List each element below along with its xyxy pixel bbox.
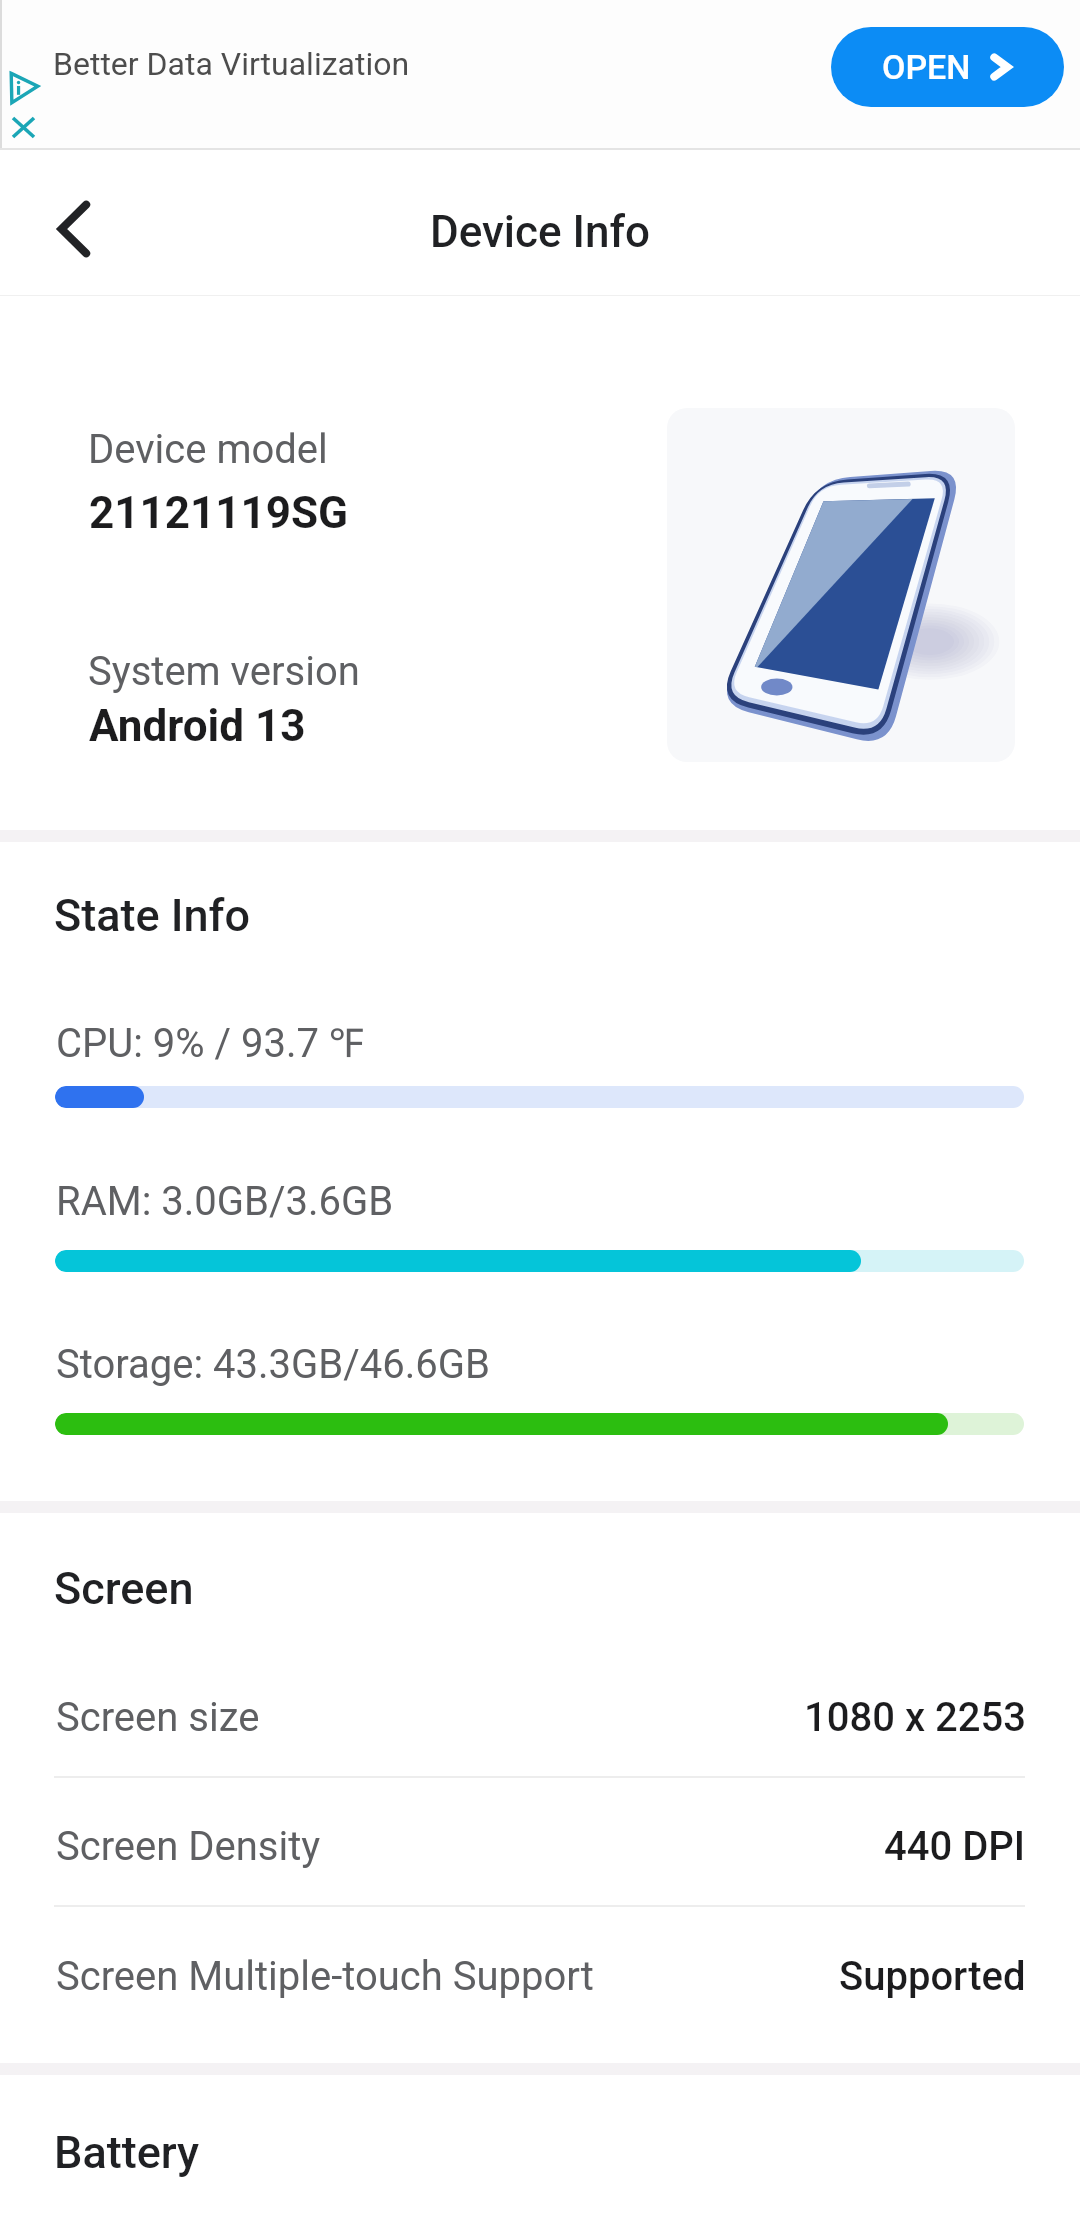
button[interactable]: Ad choices [8,71,40,105]
button[interactable]: OPEN [831,27,1064,107]
button[interactable]: Close ad [10,115,37,140]
staticText: Device Info [430,206,650,258]
button[interactable]: Screen Multiple-touch Support [0,1911,1080,2041]
staticText: Device model [88,426,328,473]
staticText: Screen size [56,1694,260,1741]
staticText: Better Data Virtualization [53,45,410,83]
staticText: 440 DPI [884,1823,1026,1870]
staticText: Supported [839,1953,1026,2000]
staticText: Screen Density [56,1823,321,1870]
staticText: System version [88,648,360,695]
button[interactable]: Ad choices [0,0,1080,150]
staticText: State Info [54,889,250,942]
button[interactable]: Screen Density [0,1781,1080,1911]
staticText: RAM: 3.0GB/3.6GB [56,1178,394,1225]
staticText: CPU: 9% / 93.7 ℉ [56,1014,364,1068]
button[interactable]: Screen size [0,1652,1080,1782]
staticText: Android 13 [89,700,306,752]
staticText: Battery [54,2126,200,2179]
button[interactable]: Back [29,185,117,273]
staticText: Screen [54,1562,194,1615]
staticText: Screen Multiple-touch Support [56,1953,594,2000]
staticText: Storage: 43.3GB/46.6GB [56,1341,490,1388]
staticText: OPEN [882,47,971,87]
staticText: 21121119SG [89,487,349,539]
staticText: 1080 x 2253 [804,1694,1026,1741]
